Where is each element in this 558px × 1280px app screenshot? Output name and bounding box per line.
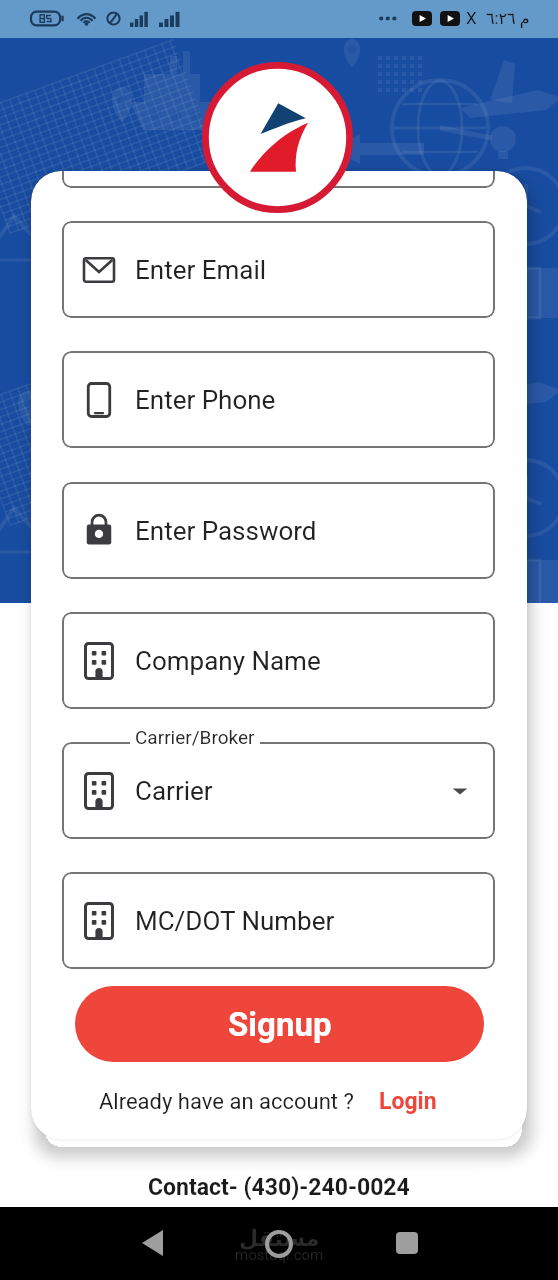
staticText: Contact- (430)-240-0024 <box>148 1174 410 1201</box>
button[interactable]: Home <box>254 1219 304 1269</box>
staticText: mostaql.com <box>235 1246 324 1264</box>
button[interactable] <box>62 872 495 969</box>
staticText: MC/DOT Number <box>135 906 335 936</box>
staticText: Enter Phone <box>135 385 276 415</box>
staticText: مستقل <box>239 1226 320 1252</box>
staticText: X <box>466 8 477 28</box>
staticText: Login <box>379 1088 437 1115</box>
staticText: Already have an account ? <box>99 1089 354 1115</box>
staticText: Signup <box>228 1005 332 1044</box>
button[interactable] <box>62 351 495 448</box>
button[interactable] <box>62 742 495 839</box>
staticText: Enter Password <box>135 516 317 546</box>
button[interactable]: Signup <box>75 986 484 1062</box>
staticText: Carrier/Broker <box>135 726 255 748</box>
button[interactable]: Login <box>379 1088 437 1115</box>
button[interactable] <box>62 612 495 709</box>
button[interactable] <box>62 221 495 318</box>
button[interactable]: Back <box>127 1218 177 1268</box>
staticText: Carrier <box>135 776 213 806</box>
button[interactable]: Recent apps <box>382 1218 432 1268</box>
button[interactable] <box>62 171 495 188</box>
staticText: Company Name <box>135 646 321 676</box>
staticText: م ٦:٢٦ <box>486 9 530 28</box>
button[interactable] <box>62 482 495 579</box>
staticText: Enter Email <box>135 255 267 285</box>
